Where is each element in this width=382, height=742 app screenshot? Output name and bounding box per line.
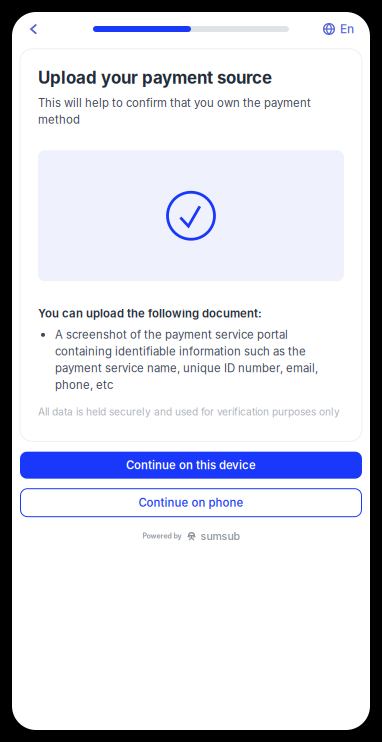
staticText: Continue on phone [138,496,243,509]
staticText: Continue on this device [126,458,256,472]
staticText: Upload your payment source [38,67,272,88]
staticText: En [340,22,354,36]
staticText: All data is held securely and used for v… [38,406,340,418]
button[interactable]: Continue on this device [20,452,362,479]
staticText: Powered by [142,532,181,540]
button[interactable]: Back [21,12,47,46]
staticText: You can upload the following document: [38,307,262,320]
staticText: A screenshot of the payment service port… [55,328,318,392]
staticText: This will help to confirm that you own t… [38,96,311,126]
button[interactable]: Continue on phone [20,489,361,517]
staticText: sumsub [200,530,240,542]
button[interactable]: En [323,12,354,46]
